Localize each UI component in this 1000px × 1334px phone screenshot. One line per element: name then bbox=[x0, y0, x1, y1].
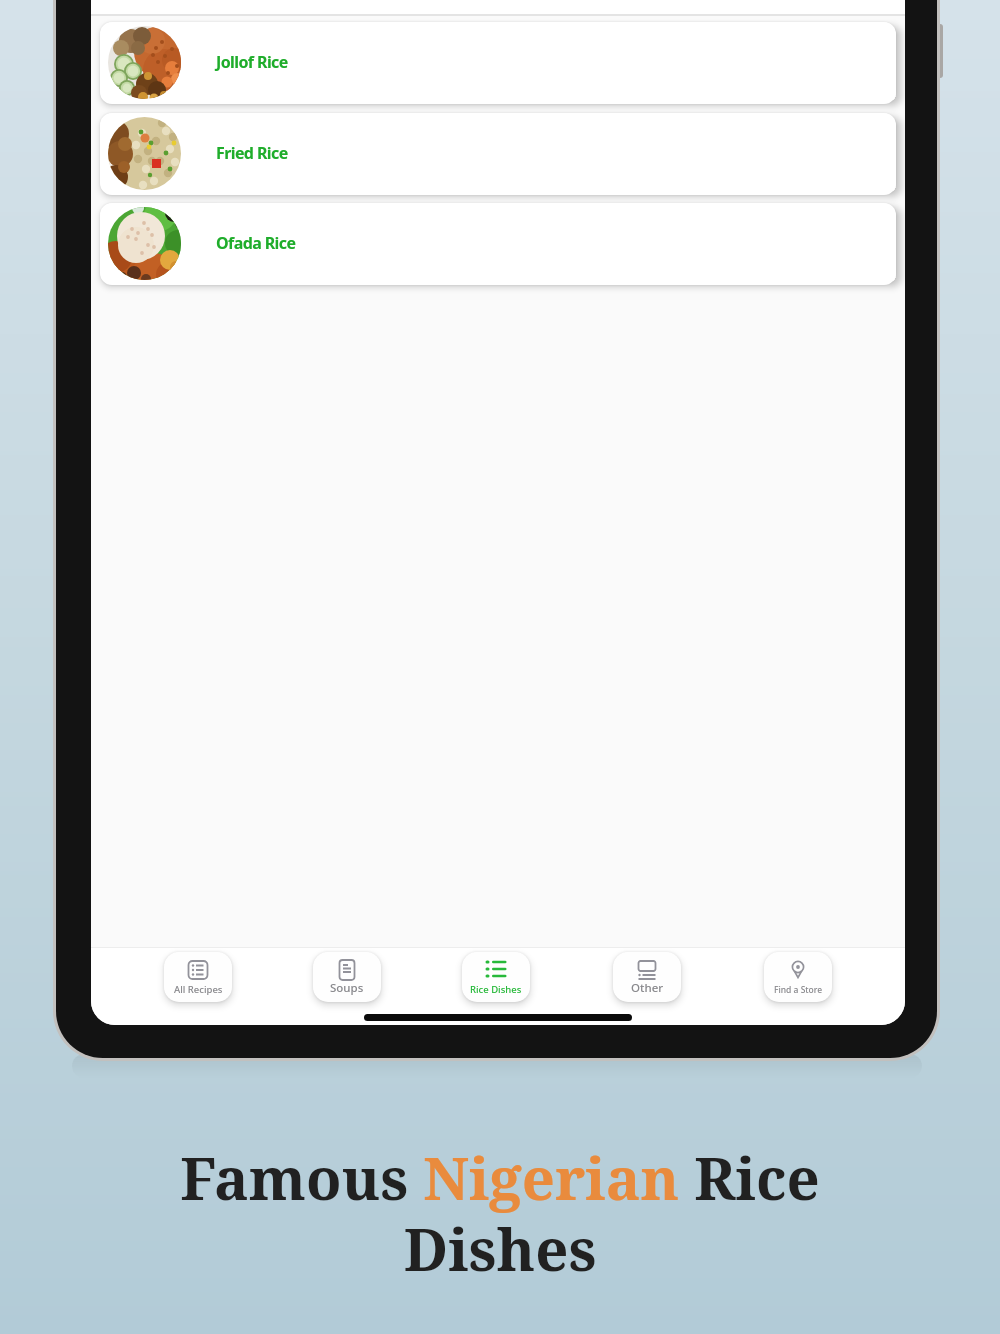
button[interactable]: Other bbox=[613, 952, 681, 1002]
button[interactable]: Jollof Rice bbox=[100, 22, 896, 104]
button[interactable]: Soups bbox=[313, 952, 381, 1002]
button[interactable]: Find a Store bbox=[764, 952, 832, 1002]
staticText: Ofada Rice bbox=[216, 232, 296, 254]
button[interactable]: All Recipes bbox=[164, 952, 232, 1002]
button[interactable]: Fried Rice bbox=[100, 113, 896, 195]
staticText: All Recipes bbox=[174, 983, 223, 996]
button[interactable]: Rice Dishes bbox=[462, 952, 530, 1002]
staticText: Famous Nigerian Rice Dishes bbox=[0, 1138, 1000, 1288]
staticText: Find a Store bbox=[774, 984, 823, 996]
staticText: Jollof Rice bbox=[216, 51, 288, 73]
button[interactable]: Ofada Rice bbox=[100, 203, 896, 285]
staticText: Rice Dishes bbox=[470, 983, 522, 996]
staticText: Soups bbox=[330, 980, 364, 996]
staticText: Other bbox=[631, 980, 664, 996]
staticText: Fried Rice bbox=[216, 142, 288, 164]
